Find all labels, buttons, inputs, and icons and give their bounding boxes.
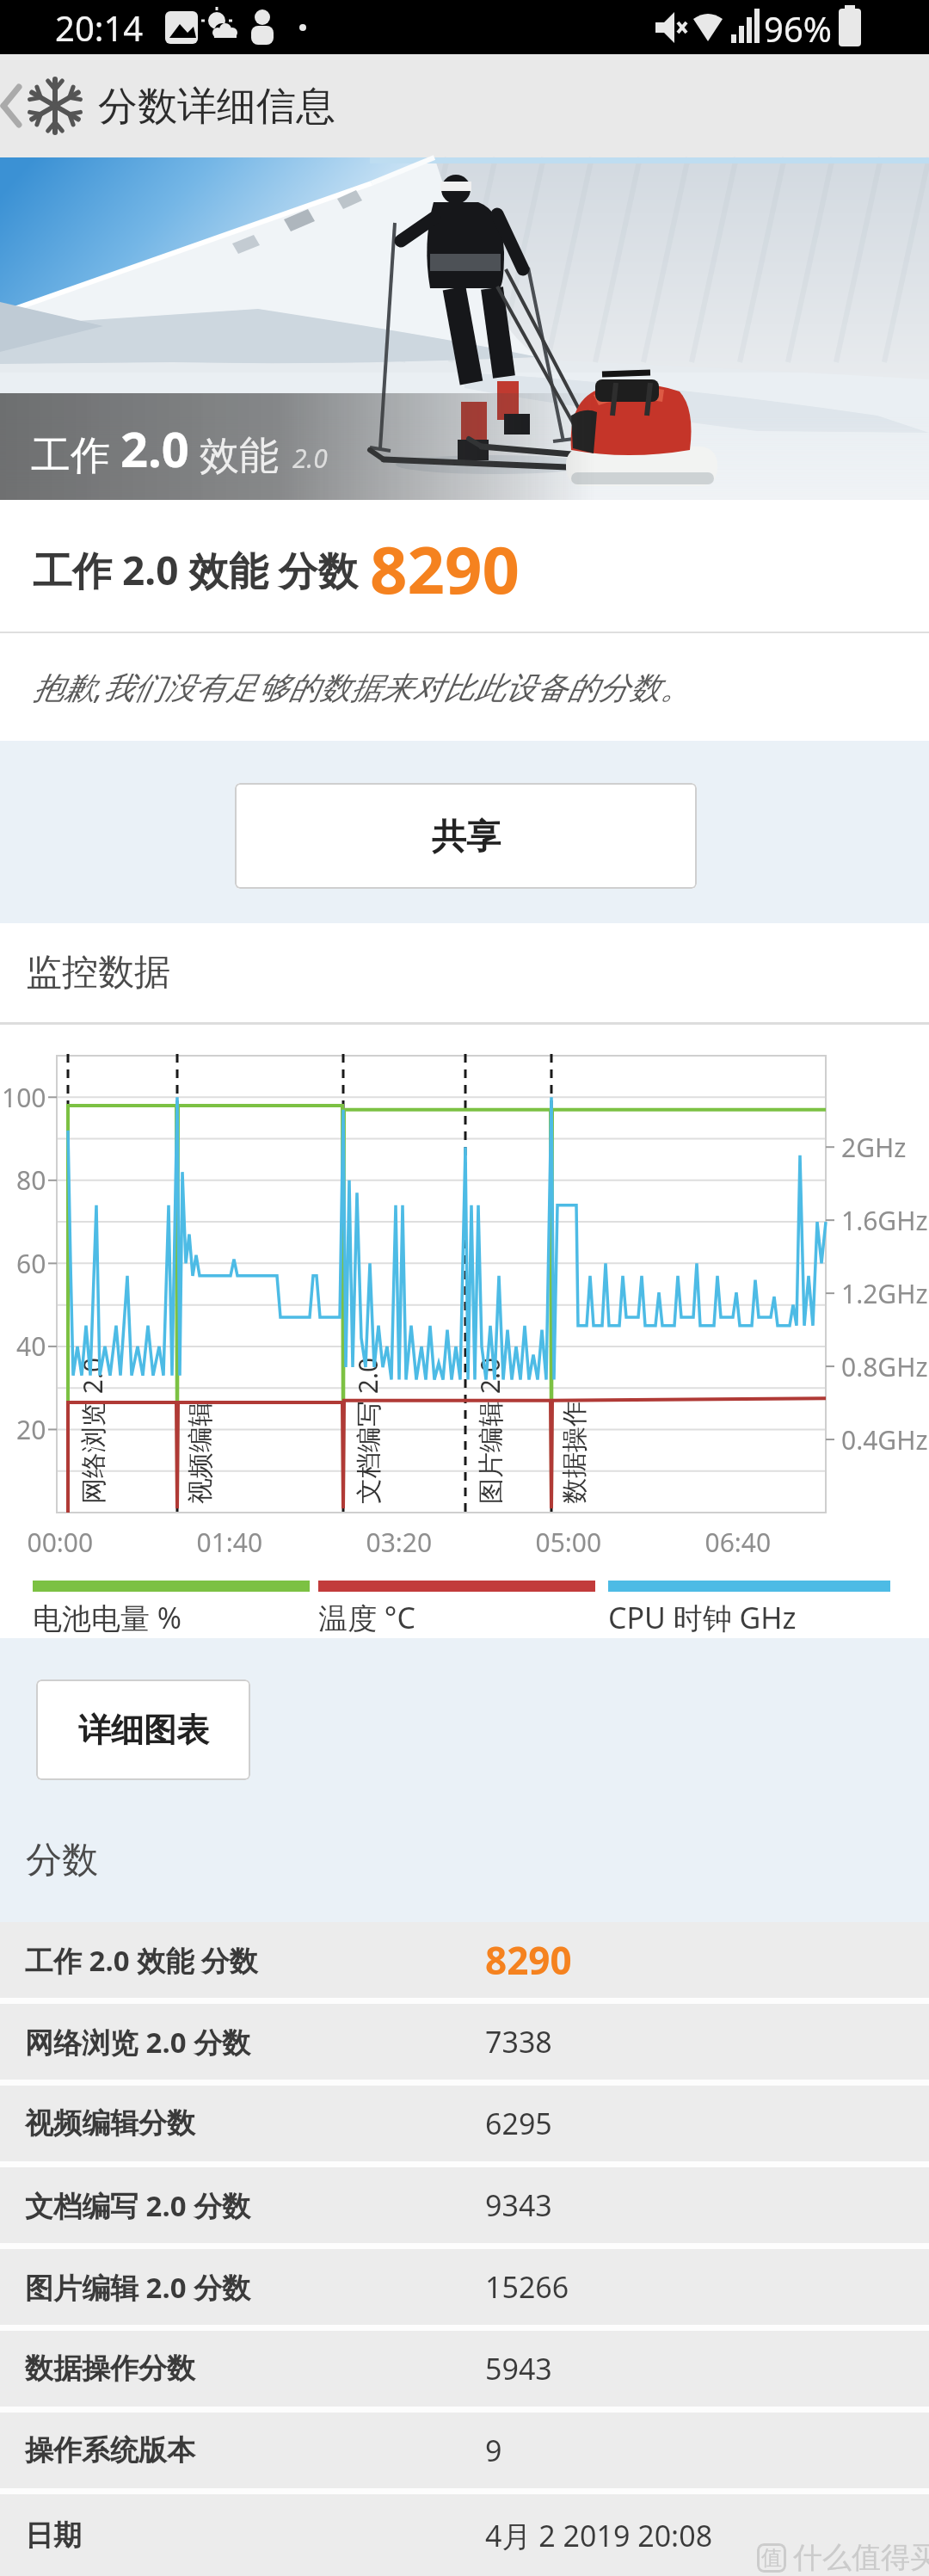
staticText: 详细图表 <box>78 1710 209 1751</box>
staticText: 8290 <box>370 524 520 613</box>
staticText: 9343 <box>485 2185 552 2225</box>
staticText: 2.0 <box>292 441 328 476</box>
staticText: 文档编写 2.0 分数 <box>25 2186 251 2225</box>
button[interactable] <box>0 54 146 157</box>
staticText: 6295 <box>485 2104 552 2143</box>
staticText: 图片编辑 2.0 分数 <box>25 2268 251 2307</box>
staticText: 96% <box>764 5 832 52</box>
staticText: 分数 <box>26 1838 98 1883</box>
staticText: 分数详细信息 <box>98 82 335 132</box>
staticText: 工作 2.0 效能 分数 <box>25 1941 258 1980</box>
staticText: 7338 <box>485 2022 552 2061</box>
staticText: 抱歉,我们没有足够的数据来对比此设备的分数。 <box>33 666 692 708</box>
staticText: 8290 <box>485 1934 572 1986</box>
staticText: 数据操作分数 <box>25 2351 195 2387</box>
staticText: 视频编辑分数 <box>25 2105 195 2142</box>
staticText: 值 <box>761 2545 782 2571</box>
staticText: 15266 <box>485 2267 569 2307</box>
staticText: 工作 2.0 效能 分数 <box>33 543 358 597</box>
staticText: 共享 <box>432 815 501 858</box>
staticText: 工作 <box>31 427 120 481</box>
staticText: 5943 <box>485 2349 552 2388</box>
staticText: 网络浏览 2.0 分数 <box>25 2023 251 2061</box>
button[interactable]: 详细图表 <box>36 1679 250 1780</box>
staticText: 日期 <box>25 2517 82 2554</box>
staticText: 9 <box>485 2431 502 2470</box>
staticText: 20:14 <box>55 4 144 51</box>
staticText: 什么值得买 <box>793 2539 929 2576</box>
staticText: 操作系统版本 <box>25 2432 195 2468</box>
button[interactable]: 共享 <box>235 783 697 889</box>
staticText: 监控数据 <box>26 950 170 995</box>
staticText: 效能 <box>189 427 279 481</box>
staticText: 2.0 <box>120 416 189 481</box>
staticText: 4月 2 2019 20:08 <box>485 2516 713 2555</box>
